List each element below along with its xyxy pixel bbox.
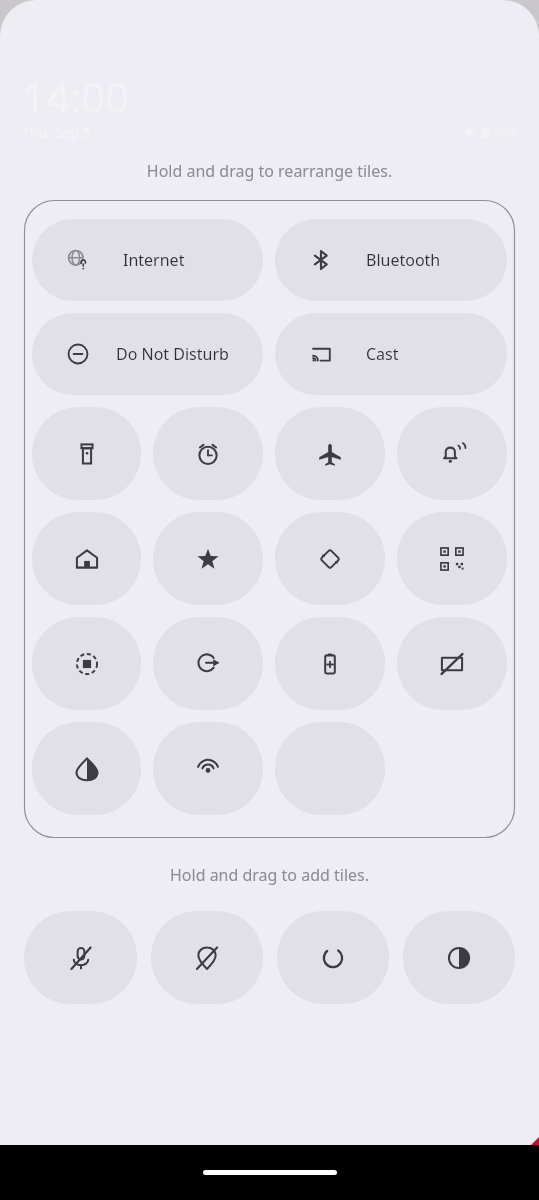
button[interactable]: Battery saver bbox=[275, 617, 385, 710]
button[interactable]: Home bbox=[32, 512, 141, 605]
button[interactable]: Screen cast off bbox=[397, 617, 507, 710]
button[interactable]: Ring vibrate bbox=[397, 407, 507, 500]
staticText: Cast bbox=[366, 343, 399, 365]
button[interactable]: Favorite bbox=[153, 512, 263, 605]
button[interactable]: QR scanner bbox=[397, 512, 507, 605]
button[interactable]: Auto rotate bbox=[275, 512, 385, 605]
staticText: Hold and drag to add tiles. bbox=[0, 864, 539, 886]
button[interactable]: Nearby share bbox=[153, 617, 263, 710]
staticText: Bluetooth bbox=[366, 249, 441, 271]
button[interactable]: Cast bbox=[275, 313, 507, 395]
staticText: Hold and drag to rearrange tiles. bbox=[0, 160, 539, 182]
button[interactable]: Airplane mode bbox=[275, 407, 385, 500]
staticText: Do Not Disturb bbox=[116, 343, 229, 365]
button[interactable]: Screen record bbox=[32, 617, 141, 710]
button[interactable]: Contrast bbox=[403, 911, 515, 1004]
button[interactable]: Alarm bbox=[153, 407, 263, 500]
button[interactable]: Internet bbox=[32, 219, 263, 301]
button[interactable]: Sync bbox=[277, 911, 389, 1004]
button[interactable]: Bluetooth bbox=[275, 219, 507, 301]
button[interactable]: Hotspot bbox=[153, 722, 263, 815]
button[interactable]: Mic off bbox=[24, 911, 137, 1004]
button[interactable]: Do Not Disturb bbox=[32, 313, 263, 395]
staticText: Internet bbox=[123, 249, 185, 271]
button[interactable]: Flashlight bbox=[32, 407, 141, 500]
button[interactable]: Dark theme bbox=[32, 722, 141, 815]
button[interactable]: Location off bbox=[151, 911, 263, 1004]
